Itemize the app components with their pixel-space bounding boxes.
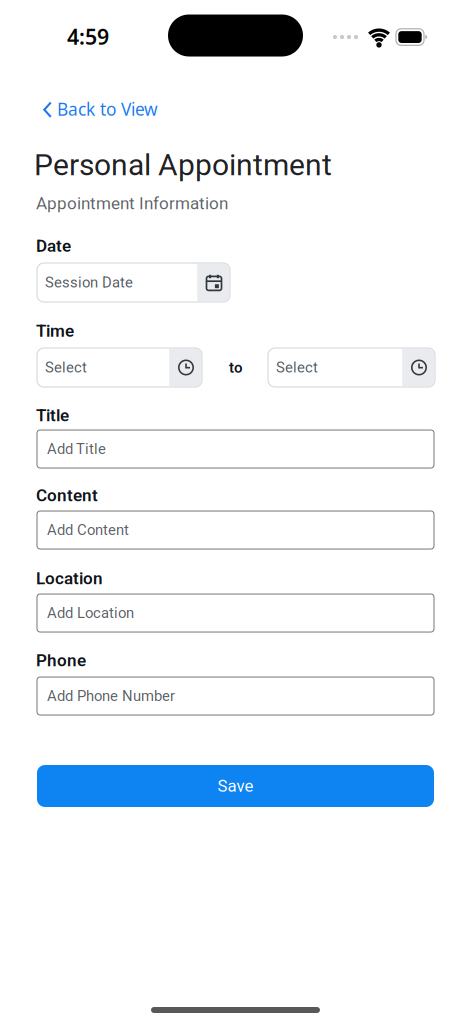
staticText: Add Title bbox=[47, 440, 106, 458]
button[interactable]: Add Content bbox=[37, 511, 434, 549]
staticText: Location bbox=[36, 568, 103, 588]
button[interactable]: Add Title bbox=[37, 430, 434, 468]
staticText: 4:59 bbox=[67, 22, 109, 51]
staticText: Title bbox=[36, 405, 69, 425]
staticText: Add Phone Number bbox=[47, 687, 175, 705]
staticText: Save bbox=[217, 776, 253, 796]
staticText: Add Location bbox=[47, 604, 134, 622]
button[interactable]: Save bbox=[37, 765, 434, 807]
staticText: Date bbox=[36, 236, 71, 256]
staticText: Back to View bbox=[57, 97, 158, 120]
staticText: Content bbox=[36, 485, 98, 505]
staticText: Select bbox=[45, 359, 87, 376]
button[interactable]: Select bbox=[268, 348, 435, 387]
staticText: Phone bbox=[36, 650, 86, 670]
button[interactable]: Select bbox=[37, 348, 202, 387]
staticText: to bbox=[229, 359, 243, 376]
staticText: Time bbox=[36, 321, 74, 341]
button[interactable]: Add Phone Number bbox=[37, 677, 434, 715]
button[interactable]: Add Location bbox=[37, 594, 434, 632]
button[interactable]: Back to View bbox=[42, 98, 220, 120]
staticText: Appointment Information bbox=[36, 193, 228, 213]
button[interactable]: Session Date bbox=[37, 263, 230, 302]
staticText: Add Content bbox=[47, 521, 129, 539]
staticText: Personal Appointment bbox=[34, 147, 332, 183]
staticText: Session Date bbox=[45, 274, 133, 291]
staticText: Select bbox=[276, 359, 318, 376]
